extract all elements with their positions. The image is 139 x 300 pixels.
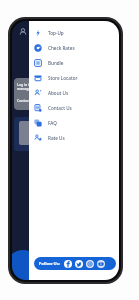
button[interactable]: FAQ	[29, 115, 119, 130]
button[interactable]: Follow Us:	[34, 257, 116, 270]
staticText: Top-Up	[48, 30, 64, 36]
staticText: Check Rates	[48, 45, 75, 51]
button[interactable]: Twitter	[75, 260, 83, 268]
button[interactable]: Account	[18, 27, 28, 37]
staticText: Store Locator	[48, 75, 78, 81]
button[interactable]: Top-Up	[29, 25, 119, 40]
button[interactable]: About Us	[29, 85, 119, 100]
button[interactable]: Log in to manage	[14, 78, 40, 110]
button[interactable]: Check Rates	[29, 40, 119, 55]
button[interactable]	[14, 117, 40, 151]
staticText: Contact Us	[48, 105, 72, 111]
button[interactable]: YouTube	[97, 260, 105, 268]
button[interactable]: Store Locator	[29, 70, 119, 85]
button[interactable]: Instagram	[86, 260, 94, 268]
button[interactable]: Facebook	[64, 260, 72, 268]
staticText: About Us	[48, 90, 69, 96]
staticText: Rate Us	[48, 135, 65, 141]
button[interactable]: Bundle	[29, 55, 119, 70]
button[interactable]: Contact Us	[29, 100, 119, 115]
button[interactable]: Rate Us	[29, 130, 119, 145]
staticText: Follow Us:	[39, 261, 61, 267]
staticText: FAQ	[48, 120, 57, 126]
staticText: Log in to manage	[17, 82, 32, 91]
staticText: Contact	[17, 98, 31, 103]
staticText: Bundle	[48, 60, 64, 66]
